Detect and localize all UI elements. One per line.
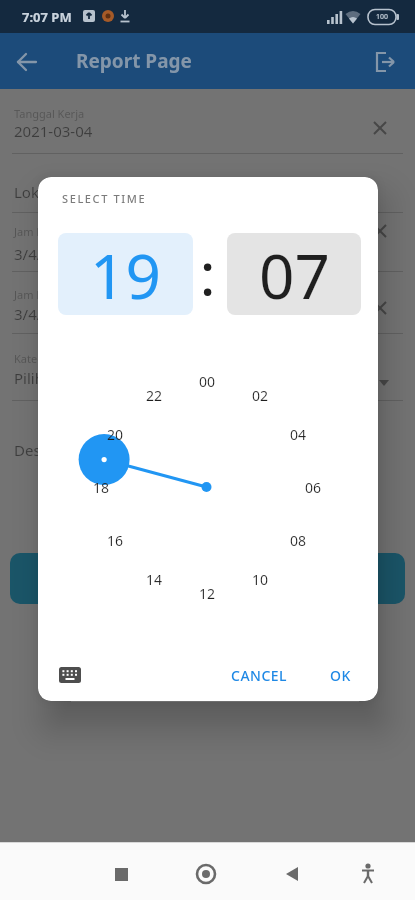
button[interactable]: 12 [192,583,222,603]
staticText: 7:07 PM [22,8,72,26]
staticText: OK [330,666,351,685]
button[interactable]: CANCEL [221,661,297,689]
button[interactable]: OK [316,661,364,689]
staticText: Pilih Kategori [14,368,108,388]
staticText: 06 [305,478,322,497]
staticText: Tanggal Kerja [14,106,85,121]
staticText: SELECT TIME [62,191,147,206]
staticText: Report Page [76,48,192,74]
button[interactable]: 19 [58,233,193,315]
button[interactable] [372,49,398,75]
staticText: Deskripsi Kerja [14,440,120,460]
staticText: Jam Keluar [14,287,70,302]
staticText: 12 [199,584,216,603]
button[interactable]: 22 [139,385,169,405]
staticText: 18 [93,478,110,497]
staticText: 100 [376,12,389,22]
button[interactable]: 06 [298,477,328,497]
button[interactable] [107,860,135,888]
staticText: 07 [259,233,330,315]
button[interactable] [372,300,388,316]
button[interactable] [354,860,382,888]
button[interactable] [372,120,388,136]
staticText: 02 [252,386,269,405]
button[interactable]: 16 [100,530,130,550]
staticText: 20 [107,425,124,444]
button[interactable]: 02 [245,385,275,405]
button[interactable]: 10 [245,569,275,589]
staticText: 2021-03-04 [14,121,93,141]
button[interactable] [10,553,405,604]
staticText: Jam Masuk [14,224,71,239]
staticText: 04 [290,425,307,444]
button[interactable] [52,659,88,691]
button[interactable]: 14 [139,569,169,589]
staticText: 08 [290,531,307,550]
button[interactable]: 04 [283,424,313,444]
staticText: 10 [252,570,269,589]
button[interactable] [192,860,220,888]
staticText: 3/4/2021 [14,304,77,324]
staticText: 00 [199,372,216,391]
button[interactable]: 18 [86,477,116,497]
button[interactable]: 00 [192,371,222,391]
staticText: Lokasi Kerja [14,182,99,202]
staticText: 16 [107,531,124,550]
button[interactable]: 20 [100,424,130,444]
staticText: 3/4/2021 [14,244,77,264]
button[interactable] [278,860,306,888]
button[interactable] [372,223,388,239]
staticText: 22 [146,386,163,405]
staticText: 14 [146,570,163,589]
staticText: CANCEL [231,666,288,685]
button[interactable]: 07 [227,233,361,315]
staticText: 19 [90,233,161,315]
button[interactable]: 08 [283,530,313,550]
staticText: Kategori [14,351,58,366]
button[interactable] [14,49,40,75]
